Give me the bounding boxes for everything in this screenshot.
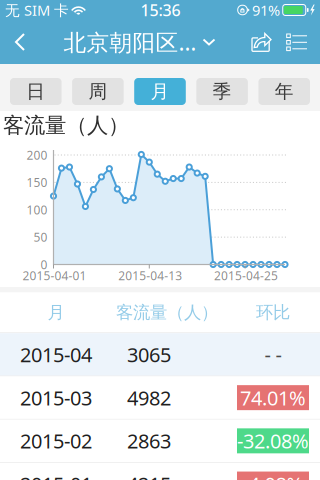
staticText: 月: [47, 302, 64, 323]
button[interactable]: Share: [244, 20, 279, 64]
button[interactable]: 2015-02: [0, 420, 320, 462]
button[interactable]: List view: [279, 19, 314, 65]
staticText: 200: [26, 147, 47, 163]
staticText: 日: [26, 80, 45, 103]
button[interactable]: 2015-03: [0, 376, 320, 419]
staticText: 客流量（人）: [116, 302, 218, 323]
staticText: 北京朝阳区…: [63, 27, 196, 57]
staticText: 4215: [127, 471, 171, 480]
button[interactable]: 北京朝阳区…: [63, 15, 215, 69]
staticText: 2015-04-13: [118, 267, 182, 283]
staticText: 周: [88, 80, 107, 103]
button[interactable]: 日: [10, 78, 62, 105]
staticText: 环比: [256, 302, 290, 323]
staticText: 季: [213, 80, 232, 103]
button[interactable]: 2015-01: [0, 463, 320, 480]
button[interactable]: 周: [72, 78, 124, 105]
staticText: 2015-04-01: [22, 267, 86, 283]
staticText: 4982: [127, 384, 171, 411]
staticText: 年: [275, 80, 294, 103]
staticText: 50: [33, 229, 47, 245]
staticText: -4.08%: [242, 471, 303, 480]
staticText: 150: [26, 174, 47, 190]
staticText: 2015-04-25: [214, 267, 278, 283]
staticText: 2015-04: [20, 341, 92, 368]
staticText: 3065: [127, 341, 171, 368]
staticText: 0: [40, 256, 47, 272]
staticText: 100: [26, 202, 47, 218]
staticText: 2015-02: [20, 428, 92, 454]
button[interactable]: 季: [196, 78, 248, 105]
button[interactable]: Back: [6, 20, 35, 64]
staticText: 2863: [127, 428, 171, 454]
staticText: -32.08%: [237, 428, 309, 454]
button[interactable]: 月: [134, 78, 186, 105]
staticText: 无 SIM 卡: [5, 0, 69, 20]
staticText: 2015-03: [20, 384, 92, 411]
staticText: 15:36: [140, 0, 180, 21]
staticText: 91%: [252, 0, 280, 20]
staticText: 74.01%: [240, 384, 306, 411]
staticText: 月: [150, 80, 169, 103]
button[interactable]: 年: [258, 78, 310, 105]
button[interactable]: 2015-04: [0, 333, 320, 376]
staticText: 2015-01: [20, 471, 92, 480]
staticText: 客流量（人）: [3, 112, 129, 139]
staticText: - -: [264, 341, 281, 368]
